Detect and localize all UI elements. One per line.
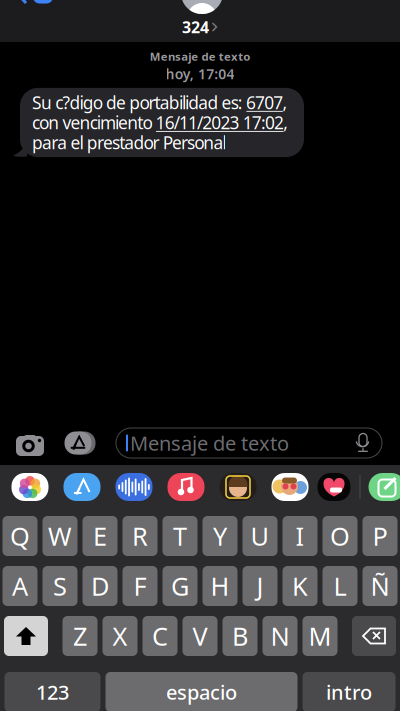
staticText: 324 [182, 16, 209, 38]
button[interactable]: R [122, 516, 157, 556]
staticText: Mensaje de texto [150, 49, 250, 64]
button[interactable]: Z [62, 616, 97, 656]
button[interactable]: App [164, 470, 207, 504]
button[interactable]: Compose [365, 470, 400, 504]
staticText: P [372, 519, 387, 553]
button[interactable]: E [82, 516, 117, 556]
staticText: R [132, 519, 148, 553]
button[interactable]: P [362, 516, 397, 556]
staticText: N [270, 619, 289, 653]
staticText: Ñ [370, 569, 389, 603]
staticText: Mensaje de texto [130, 430, 289, 456]
button[interactable]: Mensaje de texto [116, 428, 382, 458]
staticText: W [48, 519, 72, 553]
staticText: Q [10, 519, 30, 553]
staticText: S [53, 569, 67, 603]
staticText: J [256, 569, 263, 603]
button[interactable]: App [268, 470, 311, 504]
button[interactable]: S [42, 566, 77, 606]
button[interactable]: 324 [173, 17, 227, 37]
staticText: Y [213, 519, 227, 553]
staticText: Su c?digo de portabilidad es: 6707, con … [32, 92, 288, 153]
button[interactable]: W [42, 516, 77, 556]
staticText: V [192, 619, 207, 653]
button[interactable]: D [82, 566, 117, 606]
button[interactable]: V [182, 616, 217, 656]
staticText: F [133, 569, 146, 603]
button[interactable]: Back [19, 0, 59, 3]
button[interactable]: X [102, 616, 137, 656]
button[interactable]: H [202, 566, 237, 606]
staticText: B [232, 619, 248, 653]
button[interactable]: 123 [4, 672, 100, 711]
button[interactable]: Ñ [362, 566, 397, 606]
staticText: H [210, 569, 229, 603]
button[interactable]: espacio [105, 672, 297, 711]
button[interactable]: M [302, 616, 337, 656]
button[interactable]: App [216, 470, 259, 504]
button[interactable]: Q [2, 516, 37, 556]
staticText: I [295, 519, 304, 553]
staticText: M [308, 619, 331, 653]
button[interactable]: K [282, 566, 317, 606]
button[interactable]: Shift [4, 616, 48, 656]
button[interactable]: App Store [57, 421, 101, 465]
staticText: G [171, 569, 189, 603]
button[interactable]: I [282, 516, 317, 556]
staticText: intro [326, 679, 372, 705]
button[interactable]: T [162, 516, 197, 556]
staticText: L [333, 569, 346, 603]
staticText: Z [73, 619, 87, 653]
staticText: espacio [166, 679, 237, 705]
button[interactable]: B [222, 616, 257, 656]
staticText: A [12, 569, 28, 603]
staticText: K [292, 569, 308, 603]
button[interactable]: Y [202, 516, 237, 556]
button[interactable]: Camera [8, 421, 52, 465]
staticText: E [93, 519, 107, 553]
staticText: hoy, 17:04 [166, 65, 234, 83]
button[interactable]: J [242, 566, 277, 606]
button[interactable]: L [322, 566, 357, 606]
staticText: U [250, 519, 269, 553]
staticText: X [112, 619, 127, 653]
button[interactable]: App [8, 470, 51, 504]
button[interactable]: N [262, 616, 297, 656]
button[interactable]: F [122, 566, 157, 606]
button[interactable]: U [242, 516, 277, 556]
button[interactable]: G [162, 566, 197, 606]
staticText: D [91, 569, 109, 603]
button[interactable]: App [112, 470, 155, 504]
button[interactable]: Delete [352, 616, 396, 656]
staticText: 123 [36, 679, 69, 705]
staticText: C [152, 619, 168, 653]
button[interactable]: A [2, 566, 37, 606]
button[interactable]: C [142, 616, 177, 656]
button[interactable]: App [60, 470, 103, 504]
button[interactable]: App [314, 470, 353, 504]
staticText: T [173, 519, 187, 553]
staticText: O [330, 519, 350, 553]
button[interactable]: intro [302, 672, 395, 711]
button[interactable]: O [322, 516, 357, 556]
